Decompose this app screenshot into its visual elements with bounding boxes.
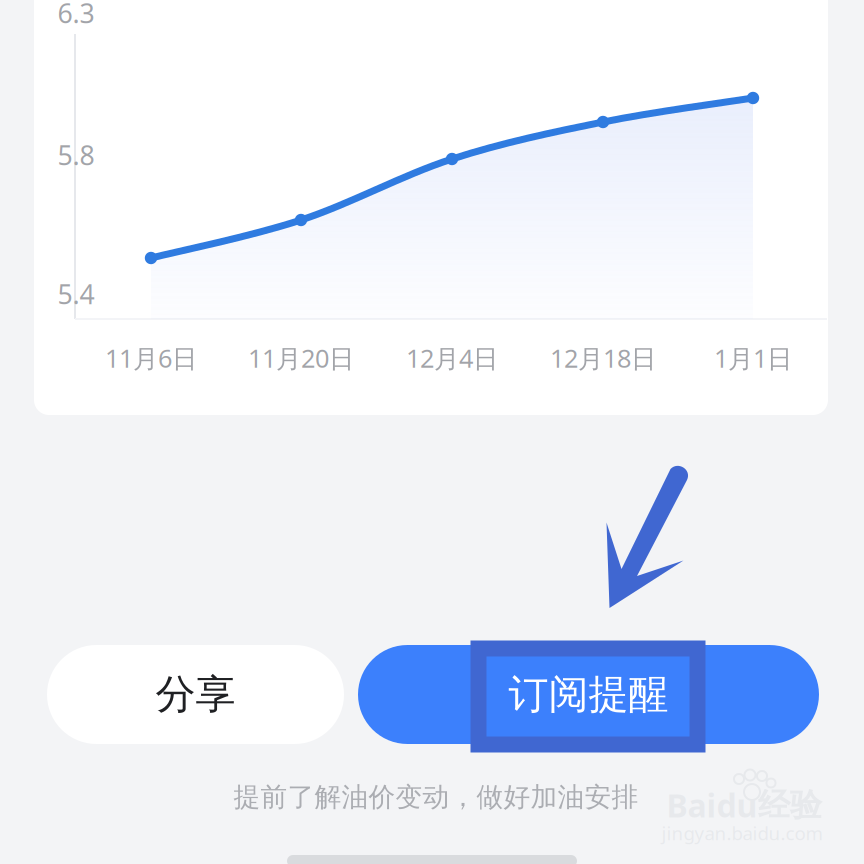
staticText: 订阅提醒	[508, 670, 668, 719]
staticText: 12月4日	[406, 341, 498, 375]
button[interactable]: 订阅提醒	[358, 638, 819, 751]
staticText: 经验	[758, 785, 822, 825]
staticText: 11月6日	[105, 341, 197, 375]
staticText: jingyan.baidu.com	[661, 821, 822, 845]
staticText: 1月1日	[714, 341, 792, 375]
staticText: 6.3	[57, 0, 94, 31]
staticText: 分享	[155, 670, 235, 719]
staticText: 11月20日	[248, 341, 354, 375]
staticText: Baidu	[666, 784, 757, 826]
staticText: 12月18日	[550, 341, 656, 375]
staticText: 5.8	[57, 137, 94, 173]
staticText: 5.4	[57, 276, 94, 312]
staticText: 提前了解油价变动，做好加油安排	[233, 781, 638, 813]
button[interactable]: 分享	[47, 645, 344, 744]
